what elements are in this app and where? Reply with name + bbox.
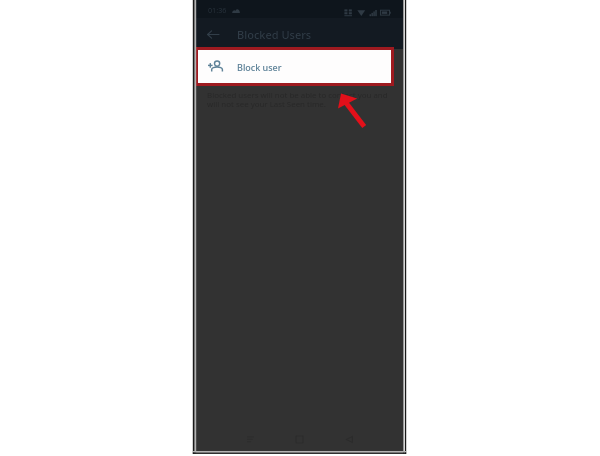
staticText: 01:36: [208, 5, 227, 15]
staticText: Block user: [237, 61, 282, 73]
button[interactable]: Block user: [198, 50, 391, 83]
button[interactable]: Back: [201, 22, 225, 46]
staticText: Blocked Users: [237, 27, 312, 42]
staticText: Blocked users will not be able to contac…: [207, 90, 388, 110]
